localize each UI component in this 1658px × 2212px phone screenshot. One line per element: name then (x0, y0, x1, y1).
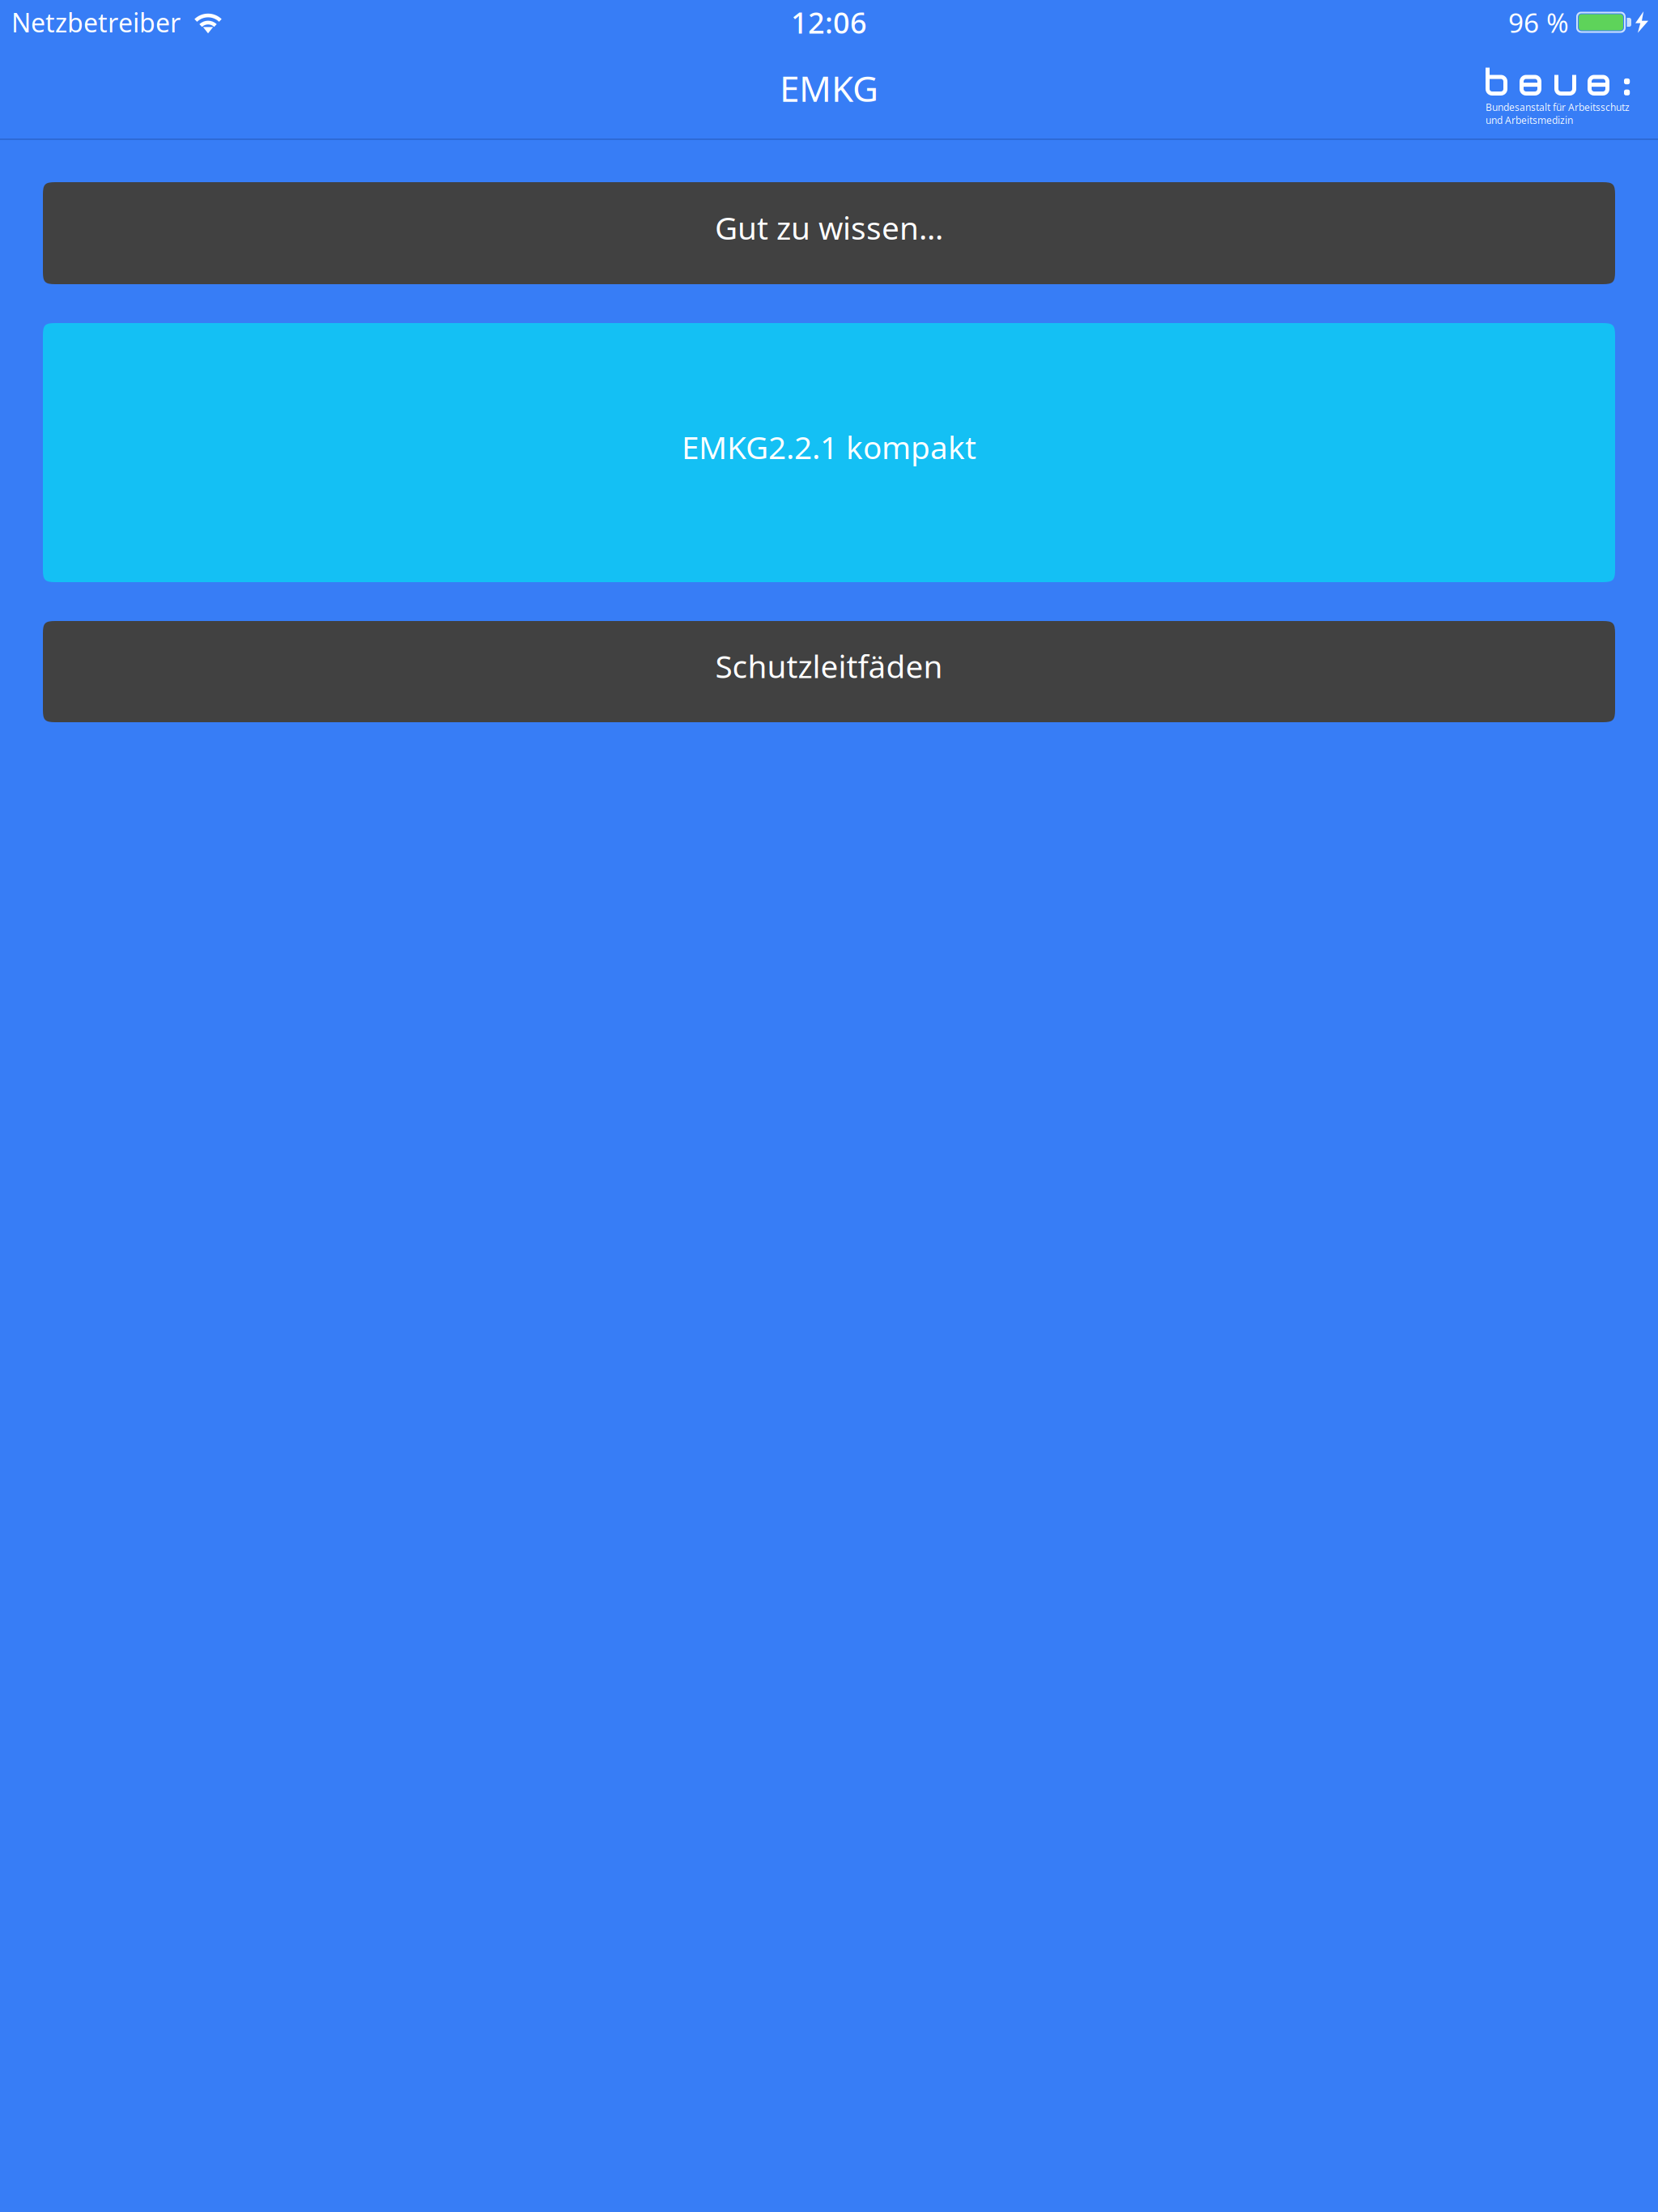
button[interactable]: EMKG2.2.1 kompakt (43, 323, 1615, 582)
staticText: Netzbetreiber (11, 5, 181, 40)
staticText: und Arbeitsmedizin (1486, 114, 1573, 127)
button[interactable]: Gut zu wissen... (43, 182, 1615, 284)
staticText: 12:06 (791, 3, 867, 42)
staticText: Schutzleitfäden (715, 645, 943, 687)
staticText: Gut zu wissen... (715, 207, 943, 248)
button[interactable]: baua — Bundesanstalt für Arbeitsschutz u… (1486, 66, 1632, 139)
button[interactable]: Schutzleitfäden (43, 621, 1615, 722)
staticText: EMKG2.2.1 kompakt (682, 426, 976, 468)
staticText: 96 % (1508, 4, 1569, 40)
staticText: Bundesanstalt für Arbeitsschutz (1486, 101, 1630, 114)
staticText: EMKG (780, 64, 878, 112)
